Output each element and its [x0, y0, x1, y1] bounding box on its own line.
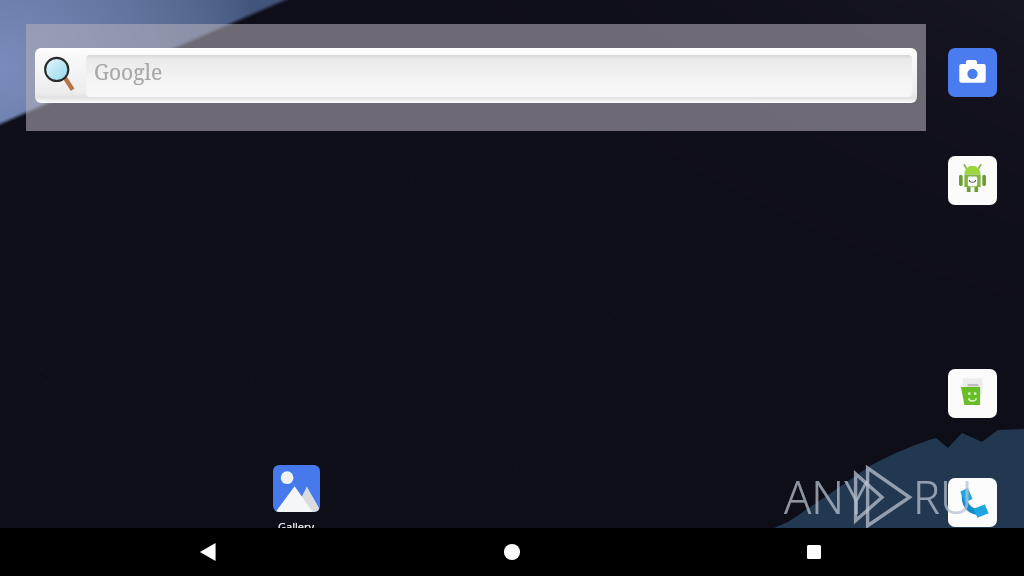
staticText: Google: [94, 58, 163, 87]
button[interactable]: Gallery: [273, 465, 320, 512]
button[interactable]: API Demos: [948, 369, 997, 418]
staticText: Gallery: [278, 519, 315, 534]
button[interactable]: Recents: [790, 528, 838, 576]
button[interactable]: Home: [488, 528, 536, 576]
button[interactable]: Google: [26, 24, 926, 131]
staticText: RU: [913, 466, 973, 527]
button[interactable]: Back: [184, 528, 232, 576]
button[interactable]: Phone: [948, 478, 997, 527]
button[interactable]: Google: [35, 48, 917, 103]
button[interactable]: Android: [948, 156, 997, 205]
button[interactable]: Camera: [948, 48, 997, 97]
staticText: ANY: [784, 466, 869, 527]
